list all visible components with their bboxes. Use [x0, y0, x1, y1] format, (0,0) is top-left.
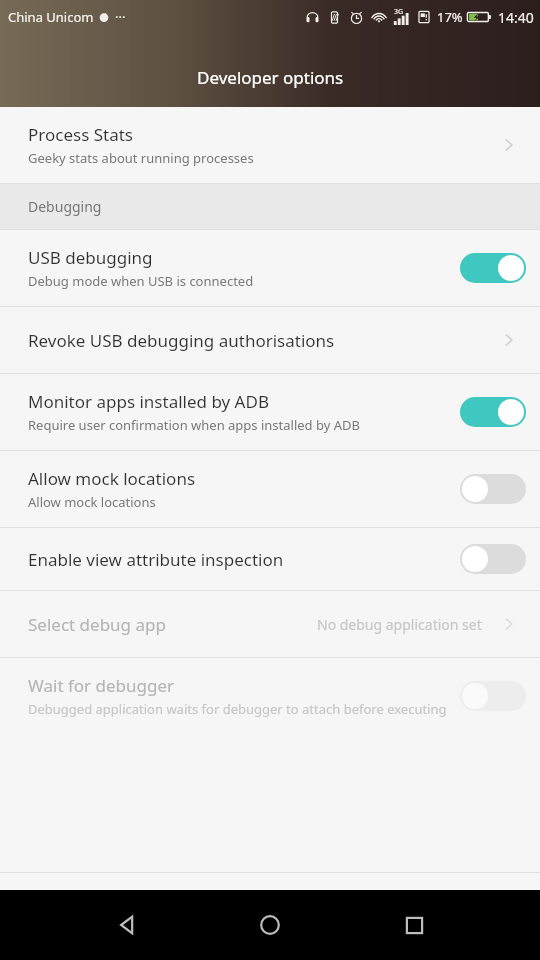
staticText: Debugged application waits for debugger …	[28, 700, 447, 718]
staticText: Debug mode when USB is connected	[28, 272, 254, 290]
button[interactable]: Monitor apps installed by ADB	[0, 374, 540, 450]
staticText: USB debugging	[28, 246, 153, 269]
button[interactable]: Allow mock locations	[0, 451, 540, 527]
button[interactable]: Select debug app	[0, 591, 540, 657]
button[interactable]: Open	[492, 128, 526, 162]
button[interactable]: Wait for debugger	[0, 658, 540, 734]
staticText: China Unicom	[8, 8, 94, 26]
button[interactable]: USB debugging	[0, 230, 540, 306]
staticText: Developer options	[197, 66, 344, 89]
button[interactable]: Recent apps	[383, 894, 445, 956]
staticText: 3G	[394, 7, 404, 17]
button[interactable]: Toggle	[460, 474, 526, 504]
button[interactable]: Enable view attribute inspection	[0, 528, 540, 590]
staticText: Wait for debugger	[28, 674, 175, 697]
button[interactable]: Toggle	[460, 253, 526, 283]
staticText: Process Stats	[28, 123, 133, 146]
button[interactable]: Process Stats	[0, 107, 540, 183]
button[interactable]: Revoke USB debugging authorisations	[0, 307, 540, 373]
button[interactable]: Toggle	[460, 397, 526, 427]
staticText: Geeky stats about running processes	[28, 149, 254, 167]
staticText: Select debug app	[28, 613, 166, 636]
staticText: Debugging	[28, 197, 102, 216]
button[interactable]: Open	[492, 607, 526, 641]
staticText: 14:40	[498, 8, 534, 27]
staticText: Require user confirmation when apps inst…	[28, 416, 360, 434]
staticText: Enable view attribute inspection	[28, 548, 284, 571]
staticText: 17%	[437, 8, 463, 26]
button[interactable]: Back	[95, 894, 157, 956]
staticText: No debug application set	[317, 615, 482, 634]
staticText: Allow mock locations	[28, 467, 196, 490]
staticText: Allow mock locations	[28, 493, 156, 511]
staticText: Monitor apps installed by ADB	[28, 390, 269, 413]
button[interactable]: Toggle	[460, 544, 526, 574]
staticText: Revoke USB debugging authorisations	[28, 329, 335, 352]
button[interactable]: Home	[239, 894, 301, 956]
button[interactable]: Toggle	[460, 681, 526, 711]
button[interactable]: Open	[492, 323, 526, 357]
staticText: ···	[115, 8, 126, 26]
